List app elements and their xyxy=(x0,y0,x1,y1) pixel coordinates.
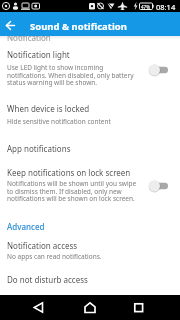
button[interactable]: Notification access xyxy=(0,232,180,260)
staticText: Use LED light to show incoming notificat… xyxy=(7,63,134,87)
button[interactable]: Do not disturb access xyxy=(0,266,180,292)
staticText: Sound & notification xyxy=(30,20,127,33)
staticText: Notification xyxy=(7,32,51,43)
button[interactable]: Keep notifications on lock screen xyxy=(0,160,180,208)
button[interactable] xyxy=(134,303,144,313)
staticText: Advanced xyxy=(7,221,45,232)
staticText: App notifications xyxy=(7,143,71,154)
button[interactable] xyxy=(145,178,169,194)
button[interactable]: App notifications xyxy=(0,136,180,157)
staticText: Hide sensitive notification content xyxy=(7,117,111,126)
staticText: Notifications will be shown until you sw… xyxy=(7,179,137,203)
staticText: Do not disturb access xyxy=(7,274,88,285)
button[interactable] xyxy=(33,302,45,314)
staticText: Keep notifications on lock screen xyxy=(7,167,131,178)
staticText: 08:14 xyxy=(156,2,176,12)
button[interactable] xyxy=(145,62,169,78)
staticText: 47% xyxy=(141,4,150,10)
staticText: When device is locked xyxy=(7,103,90,114)
button[interactable] xyxy=(6,21,16,31)
button[interactable] xyxy=(84,302,96,314)
staticText: Notification light xyxy=(7,49,70,60)
button[interactable]: Notification light xyxy=(0,44,180,90)
button[interactable]: When device is locked xyxy=(0,96,180,129)
staticText: Notification access xyxy=(7,240,78,251)
staticText: No apps can read notifications. xyxy=(7,252,102,261)
